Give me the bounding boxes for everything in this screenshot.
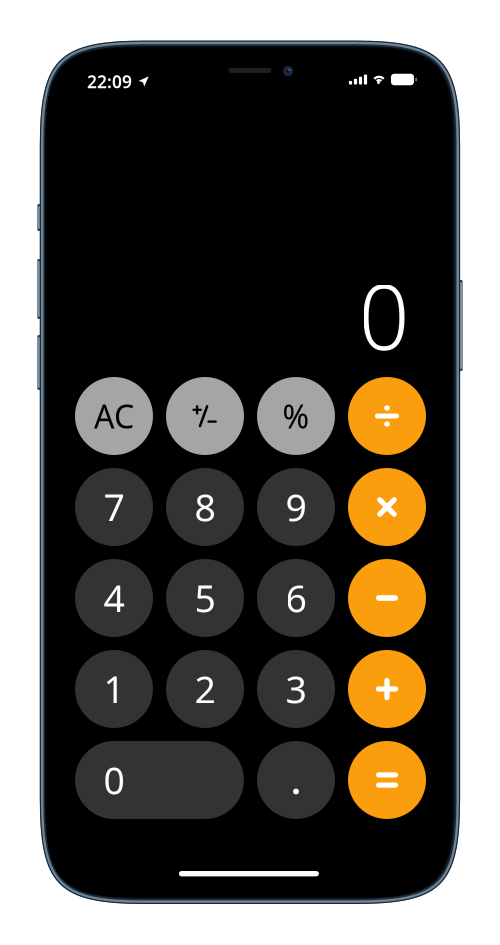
staticText: 5 <box>194 573 215 623</box>
button[interactable]: Plus <box>348 650 426 728</box>
staticText: 9 <box>285 482 306 532</box>
staticText: 3 <box>285 664 306 714</box>
button[interactable]: 3 <box>257 650 335 728</box>
staticText: AC <box>94 395 134 437</box>
button[interactable]: Decimal point <box>257 741 335 819</box>
button[interactable]: 9 <box>257 468 335 546</box>
button[interactable]: Minus <box>348 559 426 637</box>
button[interactable]: Toggle sign <box>166 377 244 455</box>
staticText: 4 <box>103 573 124 623</box>
button[interactable]: Multiply <box>348 468 426 546</box>
button[interactable]: 0 <box>75 741 244 819</box>
button[interactable]: 4 <box>75 559 153 637</box>
button[interactable]: % <box>257 377 335 455</box>
button[interactable]: 8 <box>166 468 244 546</box>
button[interactable]: Equals <box>348 741 426 819</box>
button[interactable]: AC <box>75 377 153 455</box>
staticText: 2 <box>194 664 215 714</box>
button[interactable]: 1 <box>75 650 153 728</box>
button[interactable]: 7 <box>75 468 153 546</box>
staticText: 22:09 <box>87 70 132 93</box>
staticText: 1 <box>103 664 124 714</box>
staticText: 0 <box>358 256 409 374</box>
button[interactable]: 2 <box>166 650 244 728</box>
button[interactable]: 5 <box>166 559 244 637</box>
button[interactable]: 6 <box>257 559 335 637</box>
staticText: % <box>282 395 309 437</box>
staticText: 7 <box>103 482 124 532</box>
staticText: 0 <box>103 755 124 805</box>
button[interactable]: Divide <box>348 377 426 455</box>
staticText: 6 <box>285 573 306 623</box>
staticText: 8 <box>194 482 215 532</box>
